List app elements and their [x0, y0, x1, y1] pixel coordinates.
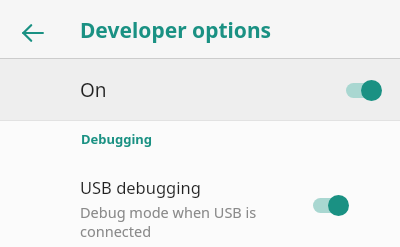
- staticText: Developer options: [80, 16, 272, 45]
- button[interactable]: Toggle: [311, 193, 349, 217]
- button[interactable]: Back: [14, 14, 52, 52]
- staticText: Debugging: [81, 130, 152, 148]
- button[interactable]: USB debugging: [0, 176, 400, 241]
- staticText: Debug mode when USB is connected: [80, 202, 310, 241]
- staticText: USB debugging: [80, 176, 201, 198]
- button[interactable]: On: [0, 59, 400, 120]
- button[interactable]: Toggle: [344, 78, 382, 102]
- staticText: On: [80, 77, 107, 103]
